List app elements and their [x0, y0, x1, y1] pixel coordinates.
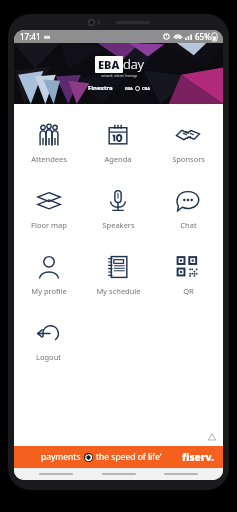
button[interactable]: Home [99, 468, 139, 480]
staticText: Floor map [31, 220, 67, 230]
staticText: Chat [180, 220, 197, 230]
staticText: fiserv. [182, 450, 215, 464]
button[interactable]: Logout [14, 314, 83, 368]
staticText: network inform leverage [101, 74, 138, 78]
button[interactable]: My schedule [83, 248, 153, 302]
staticText: EBA [125, 86, 133, 91]
button[interactable]: My profile [14, 248, 83, 302]
button[interactable]: Agenda [83, 116, 153, 170]
button[interactable]: payments [14, 446, 223, 468]
staticText: My schedule [96, 286, 141, 296]
staticText: Agenda [104, 154, 132, 164]
staticText: Sponsors [172, 154, 205, 164]
staticText: the speed of lifeʹ [96, 451, 162, 463]
button[interactable]: QR [153, 248, 223, 302]
staticText: payments [41, 451, 81, 463]
button[interactable]: Chat [153, 182, 223, 236]
button[interactable]: Back [36, 468, 76, 480]
staticText: QR [183, 286, 194, 296]
staticText: Attendees [31, 154, 67, 164]
staticText: Finextra [88, 84, 113, 92]
staticText: Logout [36, 352, 61, 362]
button[interactable]: Recents [161, 468, 201, 480]
button[interactable]: Floor map [14, 182, 83, 236]
staticText: CBA [142, 86, 150, 91]
staticText: My profile [31, 286, 67, 296]
staticText: 65% [195, 31, 211, 42]
staticText: 17:41 [20, 31, 41, 42]
staticText: EBA [98, 57, 120, 72]
button[interactable]: Attendees [14, 116, 83, 170]
button[interactable]: Speakers [83, 182, 153, 236]
staticText: day [123, 55, 144, 73]
staticText: Speakers [102, 220, 135, 230]
button[interactable]: Sponsors [153, 116, 223, 170]
